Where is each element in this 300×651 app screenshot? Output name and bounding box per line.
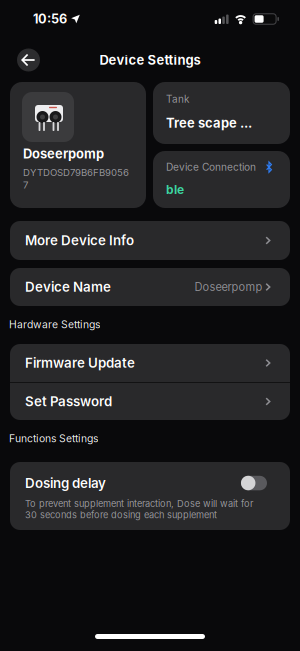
button[interactable]: Firmware Update [10,344,290,382]
button[interactable]: Dosing delay [241,476,267,490]
button[interactable]: Set Password [10,383,290,420]
button[interactable]: More Device Info [10,221,290,260]
staticText: Firmware Update [25,355,135,371]
staticText: More Device Info [25,232,134,248]
staticText: Doseerpomp [23,146,104,162]
staticText: To prevent supplement interaction, Dose … [25,498,253,520]
staticText: Dosing delay [25,475,106,491]
staticText: Set Password [25,393,112,409]
staticText: Tank [166,93,189,105]
staticText: ble [166,182,184,197]
staticText: 7 [23,179,28,191]
button[interactable]: Tank [153,82,290,144]
staticText: Device Settings [99,52,200,68]
staticText: Device Connection [166,161,256,173]
button[interactable]: Device Name [10,268,290,306]
staticText: Tree scape ... [166,115,252,131]
button[interactable]: Back [17,48,40,71]
staticText: Hardware Settings [9,318,100,331]
staticText: Doseerpomp [194,280,262,294]
staticText: Device Name [25,279,111,295]
staticText: 10:56 [33,11,67,27]
staticText: DYTDOSD79B6FB9056 [23,167,129,178]
staticText: Functions Settings [9,432,98,445]
